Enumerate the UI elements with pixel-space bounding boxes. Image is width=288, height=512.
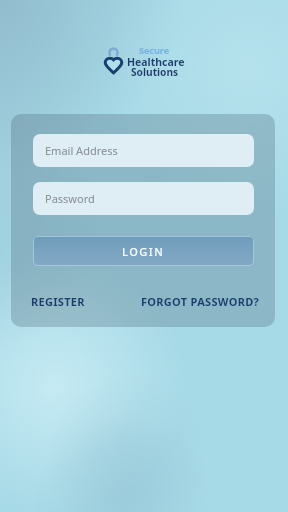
button[interactable]: FORGOT PASSWORD? [141,294,260,309]
button[interactable]: Email Address [33,134,254,167]
staticText: Password [45,191,95,206]
staticText: REGISTER [31,294,85,309]
button[interactable]: LOGIN [33,236,254,266]
button[interactable]: Password [33,182,254,215]
staticText: Healthcare [127,55,185,69]
staticText: Secure [139,44,170,56]
staticText: FORGOT PASSWORD? [141,294,260,309]
button[interactable]: REGISTER [31,294,85,309]
staticText: Email Address [45,143,118,158]
staticText: LOGIN [122,244,165,259]
staticText: Solutions [131,65,179,79]
